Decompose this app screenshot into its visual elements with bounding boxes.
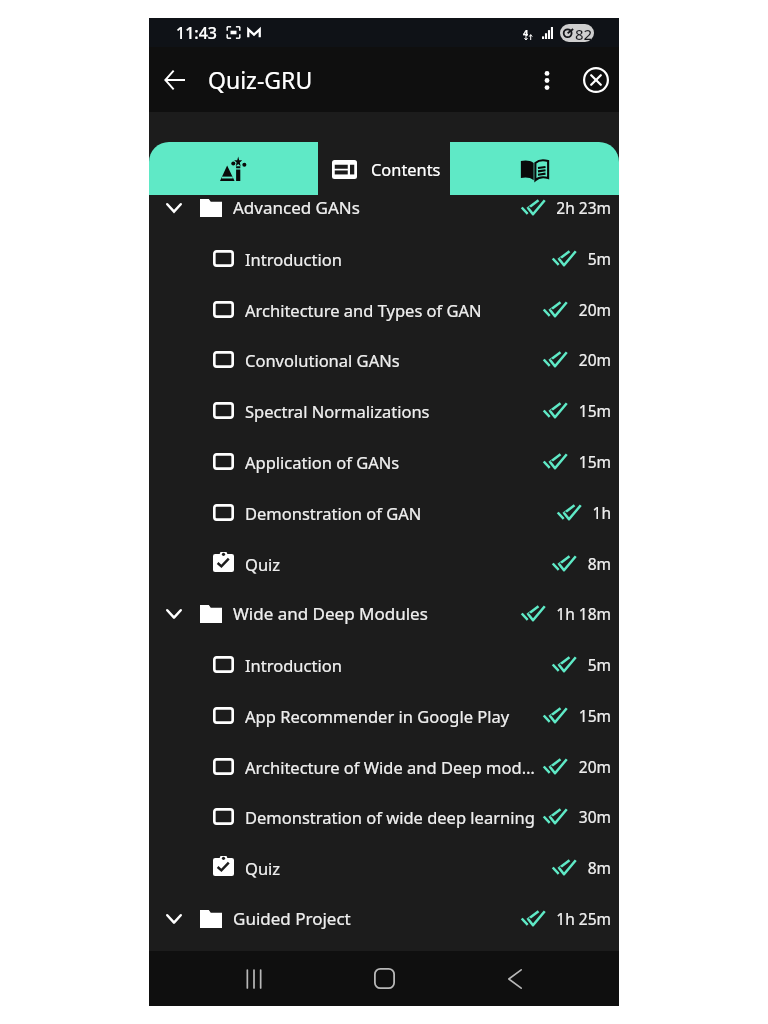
button[interactable]: Spectral Normalizations xyxy=(149,385,619,436)
staticText: 1h 18m xyxy=(556,603,611,624)
button[interactable]: Architecture of Wide and Deep mode… xyxy=(149,741,619,792)
button[interactable]: Close xyxy=(574,58,618,102)
staticText: 8m xyxy=(587,553,611,574)
staticText: 20m xyxy=(578,756,611,777)
button[interactable]: Wide and Deep Modules xyxy=(149,588,619,639)
staticText: 2h 23m xyxy=(556,197,611,218)
button[interactable]: AI Assistant xyxy=(149,142,318,195)
button[interactable]: Contents xyxy=(318,142,450,195)
staticText: 30m xyxy=(578,806,611,827)
button[interactable]: Guided Project xyxy=(149,893,619,944)
button[interactable]: Recents xyxy=(226,951,281,1006)
staticText: Application of GANs xyxy=(245,451,539,473)
staticText: Contents xyxy=(371,158,441,180)
staticText: 4G xyxy=(523,26,534,40)
staticText: 20m xyxy=(578,349,611,370)
staticText: 15m xyxy=(578,451,611,472)
button[interactable]: Quiz xyxy=(149,538,619,589)
staticText: Demonstration of GAN xyxy=(245,502,553,524)
staticText: 15m xyxy=(578,400,611,421)
staticText: 1h 25m xyxy=(556,908,611,929)
staticText: Convolutional GANs xyxy=(245,349,539,371)
staticText: 15m xyxy=(578,705,611,726)
button[interactable]: Back xyxy=(487,951,542,1006)
button[interactable]: App Recommender in Google Play xyxy=(149,690,619,741)
button[interactable]: Convolutional GANs xyxy=(149,334,619,385)
button[interactable]: Quiz xyxy=(149,842,619,893)
button[interactable]: Demonstration of GAN xyxy=(149,487,619,538)
button[interactable]: Application of GANs xyxy=(149,436,619,487)
staticText: Spectral Normalizations xyxy=(245,400,539,422)
button[interactable]: Advanced GANs xyxy=(149,182,619,233)
staticText: Architecture of Wide and Deep mode… xyxy=(245,756,539,778)
staticText: 82 xyxy=(575,24,593,42)
button[interactable]: Architecture and Types of GAN xyxy=(149,284,619,335)
staticText: 11:43 xyxy=(176,22,217,44)
staticText: Wide and Deep Modules xyxy=(233,602,517,625)
staticText: Introduction xyxy=(245,654,548,676)
staticText: Architecture and Types of GAN xyxy=(245,299,539,321)
button[interactable]: More options xyxy=(525,58,569,102)
staticText: Quiz-GRU xyxy=(208,64,313,95)
staticText: 1h xyxy=(592,502,611,523)
button[interactable]: Book xyxy=(450,142,619,195)
staticText: Quiz xyxy=(245,857,548,879)
staticText: Advanced GANs xyxy=(233,196,517,219)
button[interactable]: Demonstration of wide deep learning xyxy=(149,791,619,842)
button[interactable]: Introduction xyxy=(149,233,619,284)
staticText: Demonstration of wide deep learning xyxy=(245,806,539,828)
staticText: Introduction xyxy=(245,248,548,270)
staticText: Guided Project xyxy=(233,907,517,930)
staticText: App Recommender in Google Play xyxy=(245,705,539,727)
button[interactable]: Home xyxy=(357,951,412,1006)
staticText: Quiz xyxy=(245,553,548,575)
button[interactable]: Introduction xyxy=(149,639,619,690)
staticText: 8m xyxy=(587,857,611,878)
staticText: 5m xyxy=(587,654,611,675)
button[interactable]: Back xyxy=(152,58,196,102)
staticText: 20m xyxy=(578,299,611,320)
staticText: 5m xyxy=(587,248,611,269)
